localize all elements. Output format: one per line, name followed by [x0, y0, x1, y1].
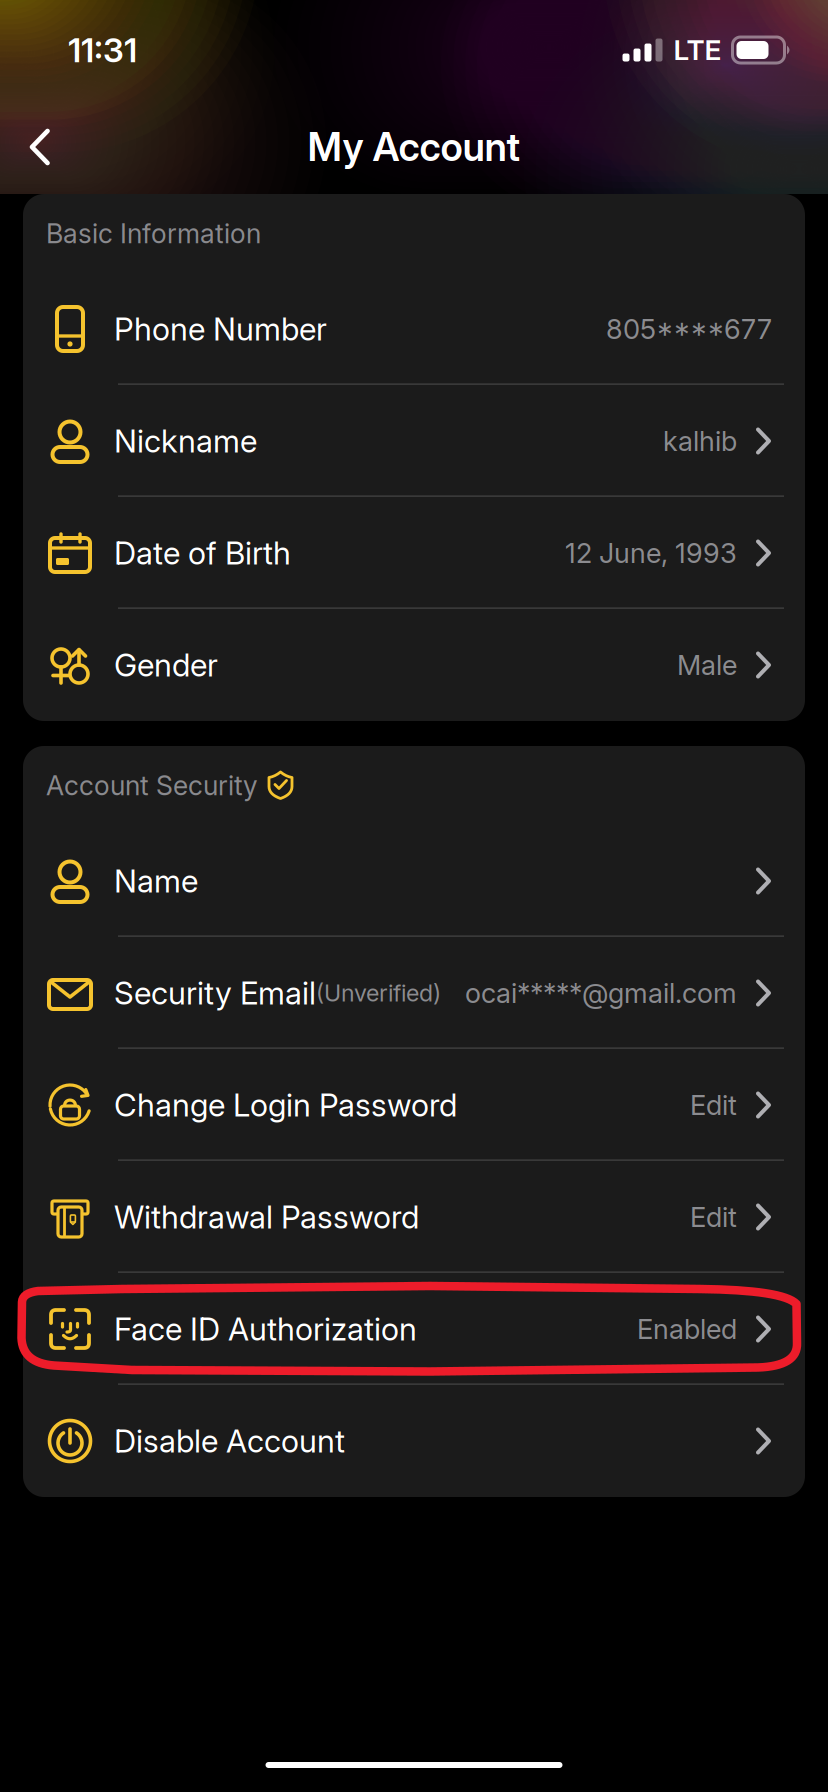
staticText: Edit	[690, 1088, 737, 1122]
staticText: Basic Information	[46, 217, 261, 250]
staticText: (Unverified)	[316, 979, 441, 1007]
button[interactable]: Gender	[23, 609, 805, 721]
staticText: ocai*****@gmail.com	[465, 976, 737, 1010]
staticText: Male	[677, 648, 737, 682]
staticText: 12 June, 1993	[565, 536, 737, 570]
staticText: Edit	[690, 1200, 737, 1234]
staticText: Security Email	[114, 974, 316, 1012]
staticText: Phone Number	[114, 310, 327, 348]
button[interactable]: Name	[23, 825, 805, 937]
staticText: 11:31	[68, 30, 137, 70]
button[interactable]: Back	[0, 112, 80, 182]
staticText: Name	[114, 862, 198, 900]
staticText: Change Login Password	[114, 1086, 457, 1124]
button[interactable]: Security Email	[23, 937, 805, 1049]
button[interactable]: Face ID Authorization	[23, 1273, 805, 1385]
button[interactable]: Date of Birth	[23, 497, 805, 609]
staticText: Nickname	[114, 422, 257, 460]
staticText: kalhib	[663, 424, 737, 458]
button[interactable]: Disable Account	[23, 1385, 805, 1497]
button[interactable]: Nickname	[23, 385, 805, 497]
staticText: Face ID Authorization	[114, 1310, 417, 1348]
staticText: Account Security	[46, 769, 258, 802]
staticText: Disable Account	[114, 1422, 345, 1460]
button[interactable]: Change Login Password	[23, 1049, 805, 1161]
button[interactable]: Withdrawal Password	[23, 1161, 805, 1273]
staticText: Withdrawal Password	[114, 1198, 419, 1236]
staticText: 805****677	[606, 312, 772, 346]
button[interactable]: Phone Number	[23, 273, 805, 385]
staticText: My Account	[307, 124, 520, 170]
staticText: LTE	[673, 33, 721, 67]
staticText: Date of Birth	[114, 534, 291, 572]
staticText: Gender	[114, 646, 218, 684]
staticText: Enabled	[637, 1312, 737, 1346]
